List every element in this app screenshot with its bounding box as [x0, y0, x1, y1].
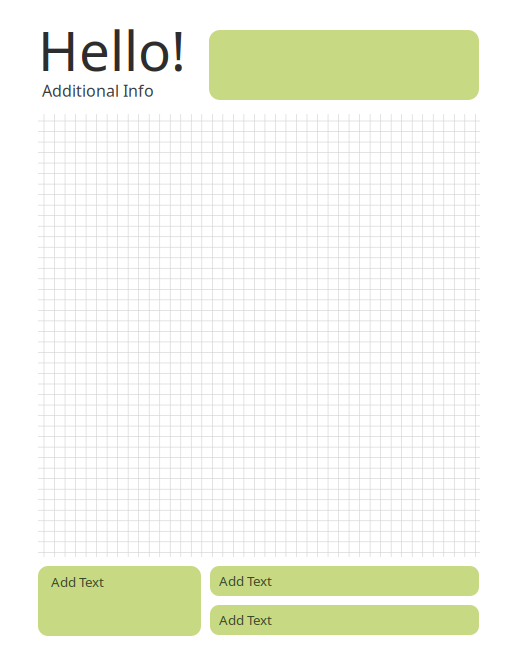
staticText: Additional Info — [42, 80, 154, 101]
staticText: Add Text — [51, 573, 104, 591]
staticText: Add Text — [219, 611, 272, 629]
staticText: Add Text — [219, 572, 272, 590]
button[interactable]: Header image — [209, 30, 479, 100]
button[interactable]: Add Text — [210, 566, 479, 596]
button[interactable]: Add Text — [38, 566, 201, 636]
button[interactable]: Add Text — [210, 605, 479, 635]
staticText: Hello! — [38, 13, 186, 86]
